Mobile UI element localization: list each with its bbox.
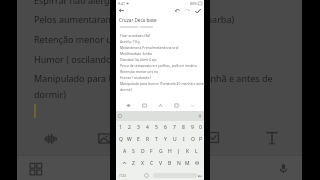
button[interactable]: 2 xyxy=(125,121,134,133)
button[interactable]: Image xyxy=(140,101,148,109)
button[interactable]: Back xyxy=(118,7,125,14)
button[interactable]: F xyxy=(147,145,156,157)
button[interactable]: Z xyxy=(129,157,138,169)
button[interactable]: ?123 xyxy=(117,169,127,180)
button[interactable]: Format text xyxy=(263,129,281,147)
button[interactable]: J xyxy=(174,145,183,157)
staticText: C xyxy=(150,160,154,167)
staticText: Espirrar não alergia mais como antes xyxy=(34,0,191,6)
staticText: Manipulado para humor (Tomando 40 manhã … xyxy=(120,81,205,86)
staticText: J xyxy=(178,148,180,155)
staticText: Perca de temperatura e joelhos, joelho e… xyxy=(120,63,205,68)
staticText: Humor ( oscilando ) xyxy=(34,53,117,65)
staticText: A xyxy=(123,148,127,155)
button[interactable]: Checklist xyxy=(172,101,180,109)
button[interactable]: More xyxy=(188,101,196,109)
button[interactable]: Voice input xyxy=(198,114,202,118)
staticText: N xyxy=(177,160,181,167)
button[interactable]: I xyxy=(179,133,188,145)
staticText: X xyxy=(141,160,144,167)
staticText: Dianabol 5a vibrit 4 sys xyxy=(120,57,157,62)
staticText: E xyxy=(137,136,140,143)
button[interactable]: Enter xyxy=(197,169,202,180)
staticText: M xyxy=(185,160,190,167)
button[interactable]: Voice xyxy=(275,160,291,176)
staticText: G xyxy=(159,148,163,155)
button[interactable]: E xyxy=(134,133,143,145)
button[interactable]: Done xyxy=(194,7,202,15)
button[interactable]: H xyxy=(165,145,174,157)
button[interactable]: U xyxy=(170,133,179,145)
button[interactable]: K xyxy=(183,145,192,157)
button[interactable]: 5 xyxy=(152,121,161,133)
button[interactable]: B xyxy=(165,157,174,169)
staticText: 8 xyxy=(182,124,185,131)
button[interactable]: Audio xyxy=(124,101,132,109)
staticText: 2 xyxy=(128,124,131,131)
staticText: Ficar acordado (8a) xyxy=(120,33,151,38)
button[interactable]: R xyxy=(143,133,152,145)
button[interactable]: P xyxy=(197,133,204,145)
staticText: Retenção menor uns no xyxy=(120,69,159,74)
button[interactable]: Recording xyxy=(43,131,59,147)
staticText: B xyxy=(168,160,172,167)
button[interactable]: Recents xyxy=(29,162,43,176)
staticText: V xyxy=(159,160,163,167)
button[interactable]: Q xyxy=(116,133,125,145)
button[interactable]: Emoji xyxy=(118,114,122,118)
button[interactable]: 9 xyxy=(188,121,197,133)
staticText: 80% xyxy=(190,1,197,6)
staticText: 9:41 xyxy=(118,1,125,6)
staticText: 3 xyxy=(137,124,140,131)
staticText: 5 xyxy=(155,124,158,131)
button[interactable]: C xyxy=(147,157,156,169)
button[interactable]: G xyxy=(156,145,165,157)
button[interactable]: 6 xyxy=(161,121,170,133)
staticText: I xyxy=(183,136,185,143)
button[interactable]: Undo xyxy=(174,7,181,14)
button[interactable]: 0 xyxy=(197,121,204,133)
button[interactable]: Backspace xyxy=(192,157,201,169)
button[interactable]: W xyxy=(125,133,134,145)
button[interactable]: A xyxy=(120,145,129,157)
button[interactable]: 1 xyxy=(116,121,125,133)
button[interactable]: 4 xyxy=(143,121,152,133)
staticText: dormir) xyxy=(120,87,132,92)
staticText: 1 xyxy=(119,124,122,131)
button[interactable]: L xyxy=(192,145,201,157)
button[interactable]: O xyxy=(188,133,197,145)
staticText: S xyxy=(132,148,135,155)
staticText: Humor ( oscilando ) xyxy=(120,75,152,80)
staticText: H xyxy=(168,148,172,155)
button[interactable]: Draw xyxy=(156,101,164,109)
staticText: U xyxy=(173,136,177,143)
button[interactable]: M xyxy=(183,157,192,169)
staticText: ?123 xyxy=(119,174,126,178)
button[interactable]: D xyxy=(138,145,147,157)
button[interactable]: Add image xyxy=(97,131,112,146)
staticText: Manipulado para humor (Tomando 40 manhã … xyxy=(34,72,273,84)
button[interactable]: Checklist xyxy=(207,131,220,144)
staticText: W xyxy=(127,136,132,143)
button[interactable]: X xyxy=(138,157,147,169)
staticText: 7 xyxy=(173,124,176,131)
staticText: Metilfenidato 3x/dia xyxy=(120,51,153,56)
button[interactable]: Y xyxy=(161,133,170,145)
staticText: 9 xyxy=(191,124,194,131)
staticText: D xyxy=(141,148,145,155)
staticText: T xyxy=(155,136,158,143)
button[interactable]: 8 xyxy=(179,121,188,133)
button[interactable]: Emoji xyxy=(144,173,149,178)
button[interactable]: Shift xyxy=(120,157,129,169)
staticText: K xyxy=(186,148,190,155)
button[interactable]: 7 xyxy=(170,121,179,133)
button[interactable]: T xyxy=(152,133,161,145)
button[interactable]: S xyxy=(129,145,138,157)
button[interactable]: Redo xyxy=(184,7,191,14)
button[interactable]: V xyxy=(156,157,165,169)
button[interactable]: 3 xyxy=(134,121,143,133)
button[interactable]: N xyxy=(174,157,183,169)
staticText: Acetil p 7 Kg xyxy=(120,39,140,44)
staticText: Metandinona Primo/metandona oral xyxy=(120,45,179,50)
